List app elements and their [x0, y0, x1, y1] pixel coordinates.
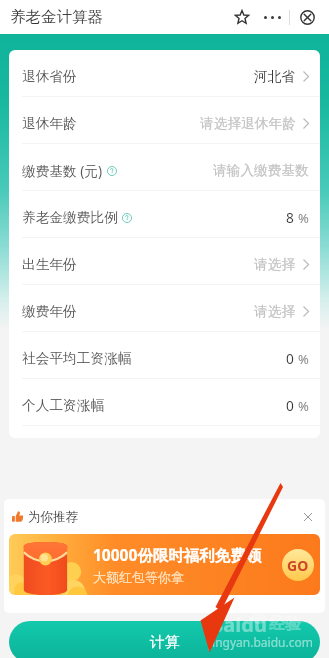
staticText: 大额红包等你拿	[93, 569, 184, 585]
button[interactable]: 计算	[9, 621, 320, 658]
button[interactable]: 缴费基数 (元)	[9, 144, 320, 190]
button[interactable]: 个人工资涨幅	[9, 379, 320, 425]
button[interactable]: 10000份限时福利免费领	[9, 534, 320, 595]
staticText: %	[298, 350, 309, 368]
staticText: 请选择退休年龄	[200, 115, 296, 132]
staticText: 缴费年份	[22, 303, 77, 320]
button[interactable]: Close advertisement	[300, 509, 316, 525]
staticText: 河北省	[254, 68, 296, 85]
staticText: 社会平均工资涨幅	[22, 350, 132, 367]
button[interactable]: 缴费年份	[9, 285, 320, 331]
staticText: %	[298, 209, 309, 227]
button[interactable]: 出生年份	[9, 238, 320, 284]
staticText: 出生年份	[22, 256, 77, 273]
staticText: 计算	[150, 633, 180, 652]
staticText: 为你推荐	[28, 509, 78, 525]
staticText: 请选择	[254, 303, 296, 320]
button[interactable]: 退休年龄	[9, 97, 320, 143]
staticText: 经验	[269, 614, 301, 634]
button[interactable]: More options	[258, 1, 286, 33]
button[interactable]: Close	[293, 1, 321, 33]
staticText: 缴费基数 (元)	[22, 161, 103, 180]
staticText: %	[298, 397, 309, 415]
staticText: 0	[286, 349, 294, 368]
staticText: 请选择	[254, 256, 296, 273]
staticText: 个人工资涨幅	[22, 397, 105, 414]
button[interactable]: Favorite	[226, 1, 258, 33]
staticText: 10000份限时福利免费领	[93, 544, 262, 565]
button[interactable]: 养老金缴费比例	[9, 191, 320, 237]
button[interactable]: 社会平均工资涨幅	[9, 332, 320, 378]
staticText: 0	[286, 396, 294, 415]
staticText: 8	[286, 208, 294, 227]
button[interactable]: GO	[282, 549, 314, 581]
staticText: jingyan.baidu.com	[209, 634, 313, 650]
staticText: GO	[287, 556, 309, 575]
staticText: 退休省份	[22, 68, 77, 85]
button[interactable]: 退休省份	[9, 50, 320, 96]
staticText: 请输入缴费基数	[213, 162, 309, 179]
staticText: 养老金计算器	[10, 7, 103, 27]
staticText: Baidu	[210, 611, 267, 638]
staticText: 退休年龄	[22, 115, 77, 132]
staticText: 养老金缴费比例	[22, 209, 118, 226]
